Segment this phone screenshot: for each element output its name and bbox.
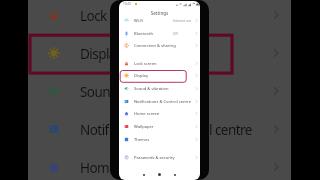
staticText: Themes	[134, 137, 150, 143]
staticText: Lock screen	[80, 7, 149, 25]
button[interactable]: Themes	[119, 134, 200, 146]
staticText: 10:45	[123, 2, 131, 6]
button[interactable]: Connection & sharing	[119, 40, 200, 52]
button[interactable]: Notifications & Control centre	[119, 96, 200, 108]
button[interactable]: Sound & vibration	[119, 83, 200, 95]
staticText: Sound & vibration	[80, 83, 185, 101]
staticText: Wallpaper	[134, 124, 154, 130]
staticText: Home screen	[134, 111, 160, 117]
button[interactable]: Wallpaper	[119, 121, 200, 133]
staticText: Lock screen	[134, 61, 157, 67]
staticText: Display	[134, 73, 148, 79]
button[interactable]: Display	[119, 70, 200, 82]
staticText: Notifications & Control centre	[134, 99, 191, 105]
staticText: Settings	[119, 10, 200, 16]
staticText: Home screen	[80, 159, 158, 177]
button[interactable]: Lock screen	[119, 58, 200, 70]
staticText: Display	[80, 45, 123, 63]
button[interactable]: Wi-Fi	[119, 15, 200, 27]
staticText: Notifications & Control centre	[80, 121, 252, 139]
staticText: Off	[173, 32, 178, 36]
staticText: Connection & sharing	[134, 43, 176, 49]
staticText: Wi-Fi	[134, 18, 144, 24]
staticText: Bluetooth	[134, 31, 153, 37]
staticText: Sound & vibration	[134, 86, 169, 92]
button[interactable]: Home screen	[119, 108, 200, 120]
staticText: Internet use	[173, 19, 192, 23]
staticText: Passwords & security	[134, 155, 175, 161]
button[interactable]: Passwords & security	[119, 152, 200, 164]
button[interactable]: Bluetooth	[119, 28, 200, 40]
